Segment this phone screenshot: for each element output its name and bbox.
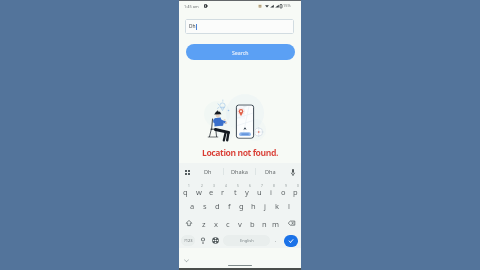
button[interactable]: 1 bbox=[179, 181, 192, 198]
button[interactable]: 0 bbox=[289, 181, 301, 198]
staticText: Dha bbox=[265, 168, 276, 176]
staticText: 8 bbox=[273, 184, 275, 188]
staticText: v bbox=[238, 219, 242, 229]
button[interactable]: b bbox=[246, 214, 258, 231]
staticText: 7 bbox=[261, 184, 263, 188]
staticText: j bbox=[264, 201, 266, 211]
button[interactable]: 7 bbox=[253, 181, 265, 198]
button[interactable]: Dh bbox=[194, 163, 222, 181]
staticText: p bbox=[293, 187, 298, 197]
button[interactable]: d bbox=[211, 198, 223, 214]
staticText: 15% bbox=[283, 3, 291, 8]
button[interactable]: . bbox=[272, 235, 280, 246]
button[interactable]: v bbox=[234, 214, 246, 231]
staticText: English bbox=[240, 238, 254, 243]
button[interactable]: c bbox=[222, 214, 234, 231]
staticText: w bbox=[196, 187, 202, 197]
staticText: Search bbox=[232, 49, 249, 56]
staticText: 9 bbox=[285, 184, 287, 188]
button[interactable]: 9 bbox=[277, 181, 289, 198]
button[interactable]: Change language bbox=[211, 235, 220, 246]
button[interactable]: h bbox=[247, 198, 259, 214]
staticText: 4 bbox=[225, 184, 227, 188]
button[interactable]: n bbox=[258, 214, 270, 231]
button[interactable]: Voice input bbox=[288, 167, 298, 177]
staticText: c bbox=[226, 219, 230, 229]
staticText: o bbox=[281, 187, 286, 197]
button[interactable]: Dh bbox=[185, 19, 294, 34]
button[interactable]: Emoji bbox=[198, 235, 207, 246]
button[interactable]: j bbox=[259, 198, 271, 214]
button[interactable]: 3 bbox=[205, 181, 217, 198]
button[interactable]: l bbox=[283, 198, 295, 214]
button[interactable]: s bbox=[199, 198, 211, 214]
staticText: n bbox=[262, 219, 267, 229]
staticText: 1:45 am bbox=[184, 4, 199, 9]
button[interactable]: a bbox=[186, 198, 199, 214]
staticText: e bbox=[209, 187, 214, 197]
staticText: 0 bbox=[297, 184, 299, 188]
button[interactable]: English bbox=[223, 235, 270, 246]
staticText: u bbox=[257, 187, 262, 197]
staticText: s bbox=[203, 201, 207, 211]
button[interactable]: ?123 bbox=[181, 235, 195, 246]
staticText: Location not found. bbox=[202, 147, 278, 159]
staticText: g bbox=[239, 201, 244, 211]
button[interactable]: Clipboard bbox=[182, 167, 192, 177]
staticText: 1 bbox=[188, 184, 190, 188]
button[interactable]: 8 bbox=[265, 181, 277, 198]
staticText: t bbox=[234, 187, 237, 197]
button[interactable]: Hide keyboard bbox=[182, 256, 191, 265]
staticText: h bbox=[251, 201, 256, 211]
staticText: z bbox=[202, 219, 206, 229]
staticText: 5 bbox=[237, 184, 239, 188]
staticText: Dhaka bbox=[231, 168, 248, 176]
button[interactable]: 6 bbox=[241, 181, 253, 198]
button[interactable]: g bbox=[235, 198, 247, 214]
button[interactable]: Enter bbox=[284, 235, 298, 247]
button[interactable]: Dha bbox=[256, 163, 284, 181]
staticText: y bbox=[245, 187, 249, 197]
button[interactable]: z bbox=[198, 214, 210, 231]
staticText: Dh bbox=[204, 168, 212, 176]
button[interactable]: Shift bbox=[179, 214, 198, 231]
button[interactable]: x bbox=[210, 214, 222, 231]
button[interactable]: f bbox=[223, 198, 235, 214]
staticText: r bbox=[221, 187, 225, 197]
staticText: d bbox=[215, 201, 220, 211]
button[interactable]: 2 bbox=[192, 181, 205, 198]
button[interactable]: Search bbox=[186, 44, 295, 60]
button[interactable]: 4 bbox=[217, 181, 229, 198]
button[interactable]: 5 bbox=[229, 181, 241, 198]
staticText: 2 bbox=[201, 184, 203, 188]
staticText: . bbox=[275, 237, 277, 244]
staticText: x bbox=[214, 219, 218, 229]
staticText: b bbox=[250, 219, 255, 229]
button[interactable]: Backspace bbox=[282, 214, 301, 231]
button[interactable]: m bbox=[270, 214, 282, 231]
button[interactable]: Dhaka bbox=[225, 163, 253, 181]
staticText: Dh bbox=[189, 23, 196, 30]
staticText: i bbox=[270, 187, 272, 197]
staticText: 6 bbox=[249, 184, 251, 188]
staticText: a bbox=[190, 201, 195, 211]
staticText: m bbox=[272, 219, 280, 229]
button[interactable]: k bbox=[271, 198, 283, 214]
staticText: q bbox=[183, 187, 188, 197]
staticText: 3 bbox=[213, 184, 215, 188]
staticText: f bbox=[228, 201, 231, 211]
staticText: ?123 bbox=[184, 238, 193, 243]
staticText: l bbox=[288, 201, 290, 211]
staticText: k bbox=[275, 201, 280, 211]
